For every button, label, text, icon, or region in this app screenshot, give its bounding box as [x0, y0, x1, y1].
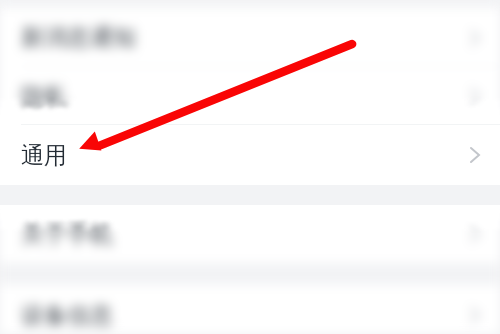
button[interactable]: 通用 [0, 125, 500, 185]
button[interactable]: 关于手机 [0, 205, 500, 263]
staticText: 设备信息 [21, 301, 113, 330]
button[interactable]: 关于手机 [0, 205, 500, 263]
other: Arrow pointing to 通用 [0, 0, 500, 334]
staticText: 设备信息 [21, 301, 113, 330]
button[interactable]: 新消息通知 [0, 8, 500, 67]
button[interactable]: 通用 [0, 125, 500, 185]
staticText: 隐私 [21, 82, 67, 111]
button[interactable]: 设备信息 [0, 285, 500, 334]
staticText: 关于手机 [21, 220, 113, 249]
button[interactable]: 设备信息 [0, 285, 500, 334]
button[interactable]: 隐私 [0, 67, 500, 125]
staticText: 隐私 [21, 82, 67, 111]
staticText: 通用 [21, 141, 67, 170]
button[interactable]: 新消息通知 [0, 8, 500, 67]
button[interactable]: 通用 [0, 125, 500, 185]
button[interactable]: 隐私 [0, 67, 500, 125]
staticText: 通用 [21, 141, 67, 170]
staticText: 设备信息 [21, 301, 113, 330]
staticText: 新消息通知 [21, 23, 136, 52]
button[interactable]: 隐私 [0, 67, 500, 125]
staticText: 设备信息 [21, 301, 113, 330]
staticText: 隐私 [21, 82, 67, 111]
button[interactable]: 通用 [0, 125, 500, 185]
staticText: 关于手机 [21, 220, 113, 249]
staticText: 通用 [21, 141, 67, 170]
button[interactable]: 隐私 [0, 67, 500, 125]
button[interactable]: 新消息通知 [0, 8, 500, 67]
button[interactable]: 设备信息 [0, 285, 500, 334]
button[interactable]: 关于手机 [0, 205, 500, 263]
button[interactable]: 设备信息 [0, 285, 500, 334]
staticText: 隐私 [21, 82, 67, 111]
staticText: 新消息通知 [21, 23, 136, 52]
staticText: 新消息通知 [21, 23, 136, 52]
button[interactable]: 新消息通知 [0, 8, 500, 67]
staticText: 新消息通知 [21, 23, 136, 52]
button[interactable]: 关于手机 [0, 205, 500, 263]
staticText: 通用 [21, 141, 67, 170]
button[interactable]: 设备信息 [0, 285, 500, 334]
staticText: 关于手机 [21, 220, 113, 249]
staticText: 设备信息 [21, 301, 113, 330]
staticText: 通用 [21, 141, 67, 170]
button[interactable]: 通用 [0, 125, 500, 185]
staticText: 新消息通知 [21, 23, 136, 52]
button[interactable]: 关于手机 [0, 205, 500, 263]
staticText: 关于手机 [21, 220, 113, 249]
staticText: 隐私 [21, 82, 67, 111]
staticText: 关于手机 [21, 220, 113, 249]
button[interactable]: 新消息通知 [0, 8, 500, 67]
button[interactable]: 隐私 [0, 67, 500, 125]
